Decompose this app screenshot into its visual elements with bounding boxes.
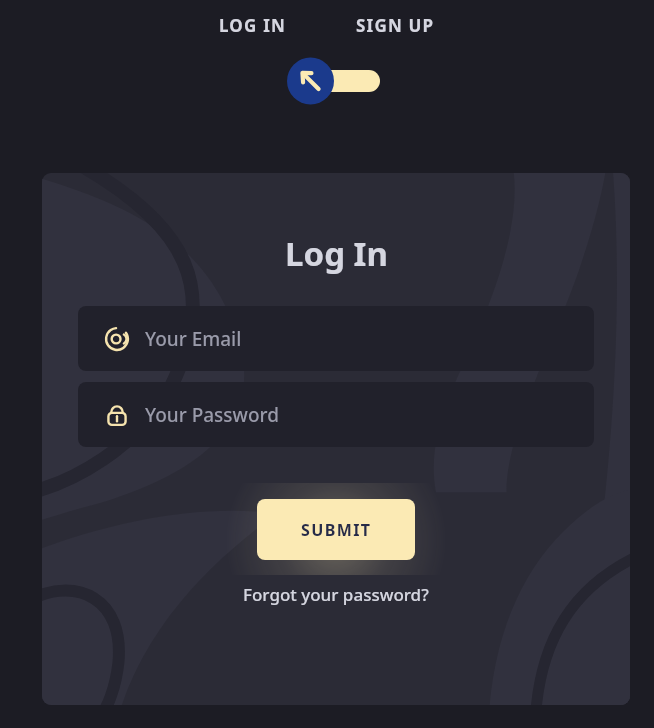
staticText: LOG IN	[219, 14, 286, 37]
staticText: Your Password	[145, 402, 279, 428]
staticText: Forgot your password?	[243, 583, 429, 606]
button[interactable]: LOG IN	[211, 10, 294, 41]
button[interactable]: Your Password	[78, 382, 594, 447]
staticText: Log In	[285, 231, 388, 276]
button[interactable]: SUBMIT	[257, 499, 415, 560]
button[interactable]: Toggle mode	[286, 57, 382, 105]
button[interactable]: Your Email	[78, 306, 594, 371]
staticText: SIGN UP	[356, 14, 435, 37]
button[interactable]: Forgot your password?	[233, 577, 439, 612]
staticText: SUBMIT	[301, 519, 372, 541]
button[interactable]: SIGN UP	[348, 10, 443, 41]
staticText: Your Email	[145, 326, 242, 352]
